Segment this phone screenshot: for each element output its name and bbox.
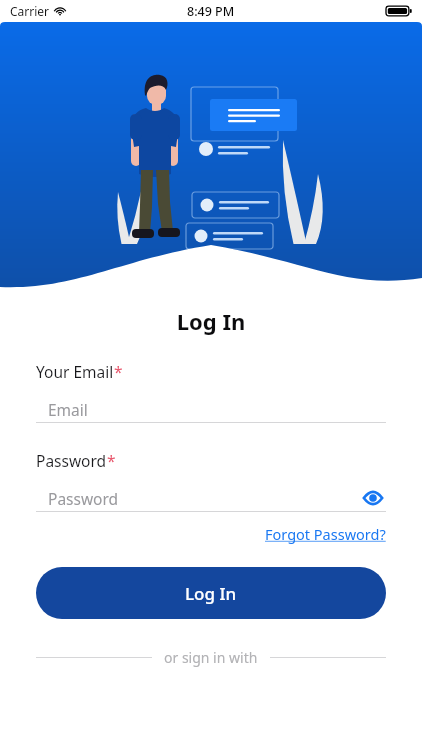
staticText: Password: [48, 488, 360, 509]
button[interactable]: Forgot Password?: [263, 521, 388, 547]
button[interactable]: Log In: [36, 567, 386, 619]
button[interactable]: Password: [36, 485, 386, 511]
staticText: Password: [36, 450, 107, 471]
staticText: or sign in with: [164, 648, 258, 667]
staticText: *: [107, 450, 116, 471]
staticText: Log In: [185, 582, 237, 605]
button[interactable]: Email: [36, 396, 386, 422]
button[interactable]: Show password: [360, 485, 386, 511]
staticText: Email: [48, 399, 386, 420]
staticText: Log In: [0, 306, 422, 336]
staticText: Forgot Password?: [265, 524, 386, 544]
staticText: *: [114, 361, 123, 382]
staticText: 8:49 PM: [187, 3, 235, 20]
staticText: Carrier: [10, 3, 50, 19]
staticText: Your Email: [36, 361, 114, 382]
